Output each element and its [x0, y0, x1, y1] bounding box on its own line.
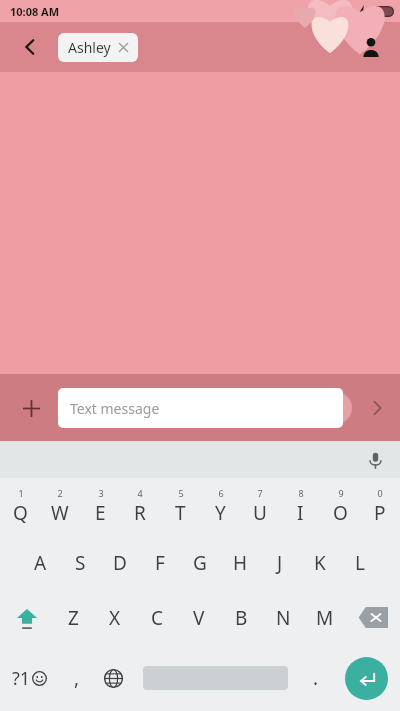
button[interactable]: Z: [53, 590, 94, 645]
button[interactable]: L: [340, 535, 380, 590]
staticText: L: [355, 550, 365, 576]
staticText: 1: [18, 487, 24, 499]
button[interactable]: G: [180, 535, 220, 590]
button[interactable]: 6: [200, 478, 240, 535]
staticText: Ashley: [68, 38, 111, 57]
button[interactable]: M: [304, 590, 346, 645]
button[interactable]: K: [300, 535, 340, 590]
staticText: D: [113, 550, 127, 576]
button[interactable]: F: [140, 535, 180, 590]
button[interactable]: 1: [0, 478, 40, 535]
button[interactable]: 4: [120, 478, 160, 535]
staticText: Y: [215, 500, 226, 526]
staticText: S: [75, 550, 86, 576]
staticText: O: [333, 500, 348, 526]
button[interactable]: V: [178, 590, 220, 645]
staticText: .: [313, 665, 319, 691]
staticText: B: [235, 605, 248, 631]
button[interactable]: 7: [240, 478, 280, 535]
button[interactable]: 9: [320, 478, 360, 535]
staticText: E: [95, 500, 106, 526]
staticText: A: [34, 550, 47, 576]
staticText: ?1: [12, 666, 31, 691]
button[interactable]: 3: [80, 478, 120, 535]
button[interactable]: 8: [280, 478, 320, 535]
staticText: U: [253, 500, 267, 526]
staticText: Q: [13, 500, 28, 526]
button[interactable]: C: [136, 590, 178, 645]
button[interactable]: S: [60, 535, 100, 590]
button[interactable]: Symbols and emoji: [0, 645, 59, 711]
staticText: 8: [298, 487, 304, 499]
button[interactable]: Send: [358, 389, 396, 427]
staticText: 6: [218, 487, 224, 499]
staticText: G: [193, 550, 207, 576]
button[interactable]: A: [20, 535, 60, 590]
button[interactable]: 2: [40, 478, 80, 535]
button[interactable]: H: [220, 535, 260, 590]
staticText: K: [314, 550, 326, 576]
staticText: C: [151, 605, 164, 631]
button[interactable]: X: [94, 590, 136, 645]
button[interactable]: Ashley: [58, 33, 138, 62]
staticText: M: [316, 605, 334, 631]
button[interactable]: Contact: [354, 30, 388, 64]
staticText: ,: [74, 665, 80, 691]
button[interactable]: Backspace: [346, 590, 400, 645]
staticText: V: [193, 605, 205, 631]
button[interactable]: J: [260, 535, 300, 590]
button[interactable]: N: [262, 590, 304, 645]
staticText: 3: [98, 487, 104, 499]
button[interactable]: Change language: [94, 645, 133, 711]
button[interactable]: 5: [160, 478, 200, 535]
staticText: T: [175, 500, 186, 526]
staticText: X: [109, 605, 121, 631]
staticText: F: [155, 550, 165, 576]
button[interactable]: Text message: [58, 388, 343, 428]
staticText: R: [134, 500, 146, 526]
button[interactable]: Shift: [0, 590, 53, 645]
staticText: Text message: [70, 399, 160, 418]
staticText: P: [374, 500, 386, 526]
button[interactable]: Back: [12, 29, 48, 65]
staticText: W: [51, 500, 69, 526]
staticText: 2: [57, 487, 63, 499]
staticText: J: [277, 550, 283, 576]
button[interactable]: ,: [59, 645, 94, 711]
staticText: 5: [178, 487, 184, 499]
staticText: Z: [68, 605, 79, 631]
button[interactable]: Add attachment: [14, 391, 48, 425]
button[interactable]: Voice input: [360, 445, 390, 475]
staticText: 0: [377, 487, 383, 499]
button[interactable]: [133, 645, 298, 711]
staticText: I: [297, 500, 304, 526]
button[interactable]: 0: [360, 478, 400, 535]
button[interactable]: B: [220, 590, 262, 645]
staticText: N: [276, 605, 291, 631]
staticText: 9: [338, 487, 344, 499]
staticText: H: [233, 550, 248, 576]
button[interactable]: D: [100, 535, 140, 590]
staticText: 7: [257, 487, 263, 499]
button[interactable]: Enter: [333, 645, 400, 711]
staticText: 4: [137, 487, 143, 499]
staticText: 10:08 AM: [10, 4, 60, 19]
button[interactable]: .: [298, 645, 333, 711]
